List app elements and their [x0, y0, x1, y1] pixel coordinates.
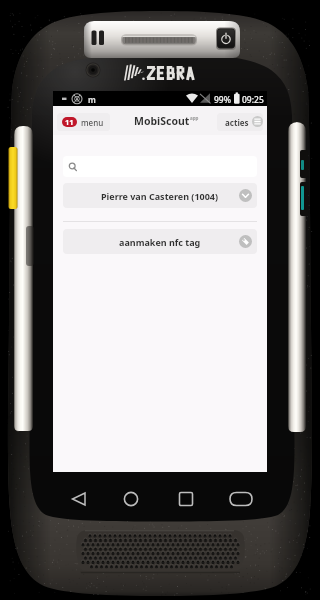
staticText: menu	[81, 117, 104, 128]
staticText: aanmaken nfc tag	[119, 236, 201, 248]
button[interactable]: Home	[115, 488, 147, 510]
staticText: MobiScout	[134, 114, 190, 128]
staticText: 11	[65, 117, 74, 127]
button[interactable]: Search	[63, 156, 257, 177]
staticText: m	[88, 94, 96, 105]
button[interactable]: aanmaken nfc tag	[63, 229, 257, 254]
staticText: app	[190, 115, 199, 121]
button[interactable]: Menu	[225, 488, 257, 510]
staticText: 09:25	[242, 94, 264, 106]
button[interactable]: acties	[217, 113, 263, 131]
staticText: 99%	[214, 94, 231, 106]
staticText: acties	[225, 117, 249, 128]
button[interactable]: Pierre van Casteren (1004)	[63, 183, 257, 208]
button[interactable]: Recent apps	[170, 488, 202, 510]
staticText: Pierre van Casteren (1004)	[101, 190, 219, 202]
button[interactable]: Back	[63, 488, 95, 510]
button[interactable]: 11	[57, 113, 110, 131]
